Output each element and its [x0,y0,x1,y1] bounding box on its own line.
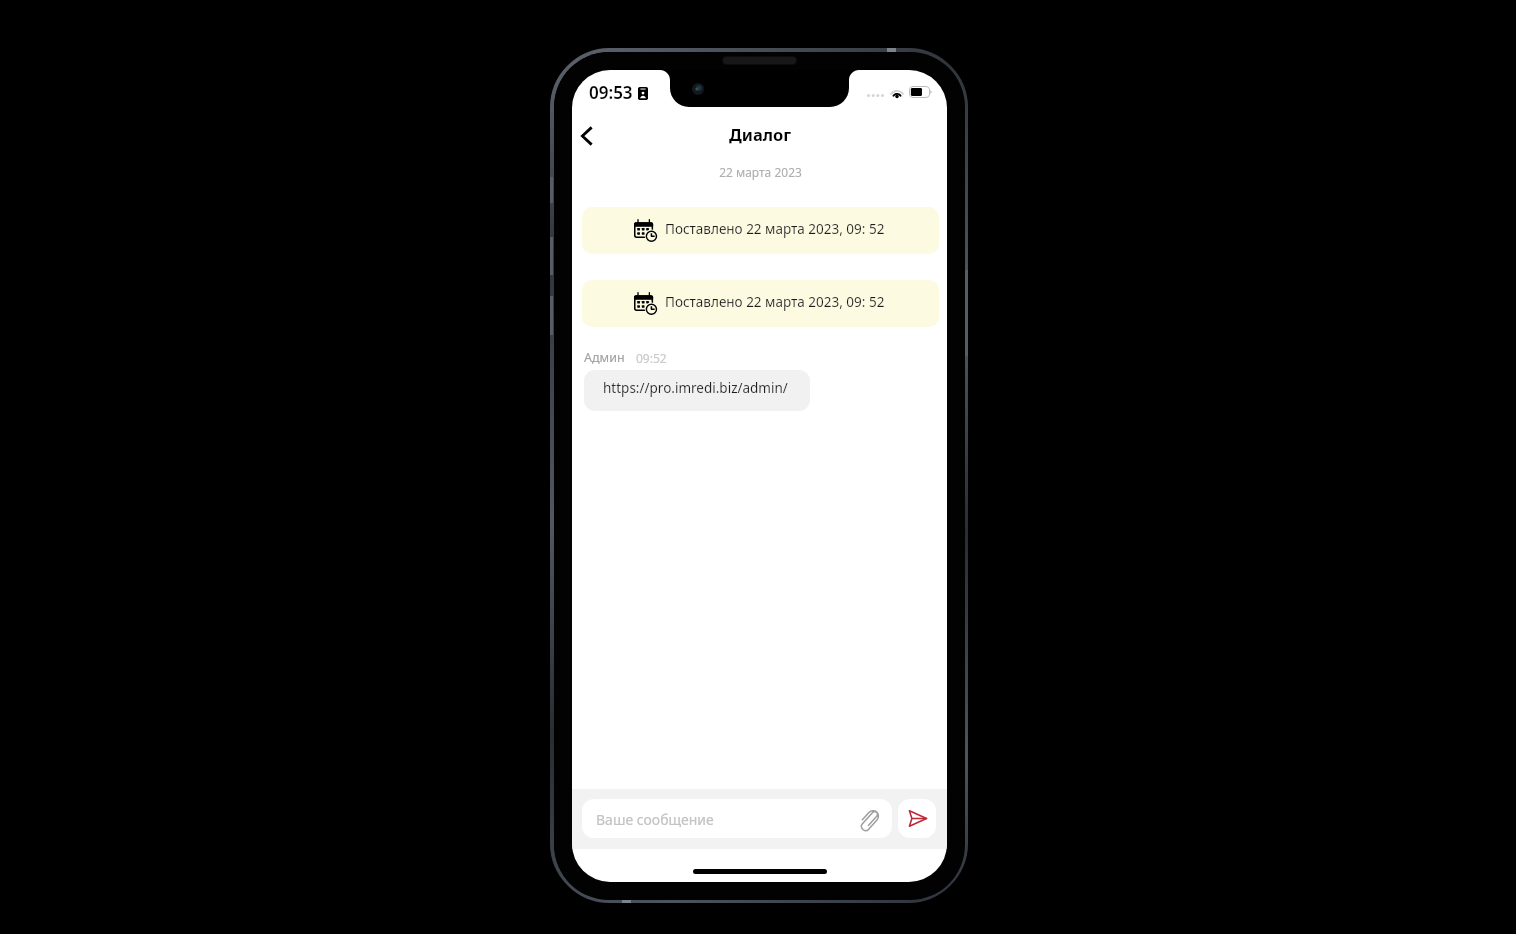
button[interactable]: Ваше сообщение [582,799,892,838]
staticText: Диалог [729,123,792,145]
button[interactable]: Отправить [898,799,936,838]
button[interactable]: https://pro.imredi.biz/admin/ [584,370,810,411]
staticText: 22 марта 2023 [573,164,947,180]
staticText: Админ [584,349,625,366]
staticText: Поставлено 22 марта 2023, 09: 52 [665,220,885,238]
button[interactable]: Поставлено 22 марта 2023, 09: 52 [582,280,939,327]
staticText: 09:53 [589,81,633,104]
button[interactable]: Назад [572,114,603,157]
staticText: Ваше сообщение [596,810,714,829]
staticText: Поставлено 22 марта 2023, 09: 52 [665,293,885,311]
staticText: 09:52 [636,350,667,366]
staticText: https://pro.imredi.biz/admin/ [603,379,788,397]
button[interactable]: Поставлено 22 марта 2023, 09: 52 [582,207,939,254]
button[interactable]: Прикрепить файл [856,805,884,833]
